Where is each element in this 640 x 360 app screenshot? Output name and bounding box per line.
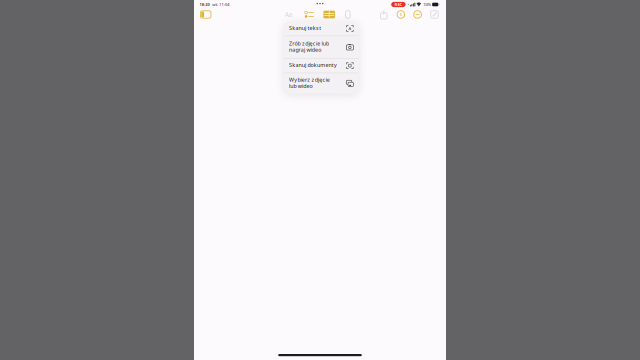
staticText: 74% [423, 2, 431, 7]
button[interactable]: More [411, 9, 424, 20]
staticText: Skanuj dokumenty [289, 61, 337, 69]
staticText: nagraj wideo [289, 46, 321, 53]
staticText: Wybierz zdjęcie [289, 76, 330, 83]
staticText: Skanuj tekst [289, 24, 321, 31]
button[interactable]: Skanuj dokumenty [284, 58, 358, 73]
button[interactable]: Attach [341, 9, 354, 20]
button[interactable]: Zrób zdjęcie lub [284, 36, 358, 58]
button[interactable]: Skanuj tekst [284, 21, 358, 36]
staticText: lub wideo [289, 82, 313, 89]
button[interactable]: Wybierz zdjęcie [284, 73, 358, 93]
button[interactable]: New note [428, 9, 441, 20]
staticText: Aa [285, 10, 293, 19]
staticText: 18:20 [199, 2, 210, 7]
button[interactable]: Table [323, 9, 336, 20]
staticText: REC [394, 2, 402, 7]
staticText: Zrób zdjęcie lub [289, 40, 329, 47]
staticText: wk 11:04 [212, 2, 229, 7]
button[interactable]: Show note list [199, 9, 212, 20]
button[interactable]: Checklist [303, 9, 316, 20]
button[interactable]: Format [282, 9, 295, 20]
button[interactable]: Share [377, 9, 390, 20]
button[interactable]: Lock note [394, 9, 407, 20]
